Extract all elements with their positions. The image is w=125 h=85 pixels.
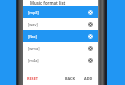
staticText: [wma] xyxy=(28,46,40,51)
staticText: ADD xyxy=(84,76,93,81)
staticText: RESET xyxy=(27,76,39,81)
staticText: BACK xyxy=(65,76,76,81)
button[interactable]: Remove [wma] xyxy=(86,44,95,53)
button[interactable]: [mp3] xyxy=(23,6,98,18)
button[interactable]: Remove [m4a] xyxy=(86,56,95,65)
button[interactable]: RESET xyxy=(25,73,41,82)
button[interactable]: [wma] xyxy=(23,42,98,54)
staticText: [flac] xyxy=(28,34,37,39)
button[interactable]: [flac] xyxy=(23,30,98,42)
staticText: [mp3] xyxy=(28,10,39,15)
button[interactable]: [m4a] xyxy=(23,54,98,66)
button[interactable]: Remove [flac] xyxy=(86,32,95,41)
staticText: [wav] xyxy=(28,22,38,27)
button[interactable]: ADD xyxy=(82,73,95,82)
staticText: Music format list xyxy=(30,0,66,6)
button[interactable]: BACK xyxy=(63,73,78,82)
button[interactable]: Remove [wav] xyxy=(86,20,95,29)
button[interactable]: [wav] xyxy=(23,18,98,30)
button[interactable]: Remove [mp3] xyxy=(86,8,95,17)
staticText: [m4a] xyxy=(28,58,39,63)
